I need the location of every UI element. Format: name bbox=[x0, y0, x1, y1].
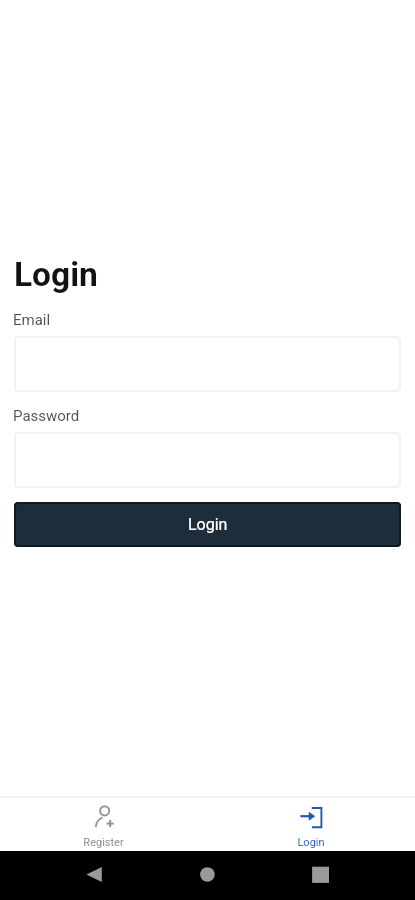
staticText: Email bbox=[13, 311, 51, 329]
button[interactable]: Login bbox=[207, 798, 415, 851]
staticText: Login bbox=[188, 515, 228, 534]
staticText: Login bbox=[14, 255, 98, 294]
staticText: Login bbox=[297, 836, 325, 849]
staticText: Password bbox=[13, 407, 80, 425]
button[interactable] bbox=[14, 336, 401, 392]
button[interactable]: Register bbox=[0, 798, 207, 851]
staticText: Register bbox=[83, 836, 124, 849]
button[interactable]: Login bbox=[14, 502, 401, 547]
button[interactable] bbox=[14, 432, 401, 488]
